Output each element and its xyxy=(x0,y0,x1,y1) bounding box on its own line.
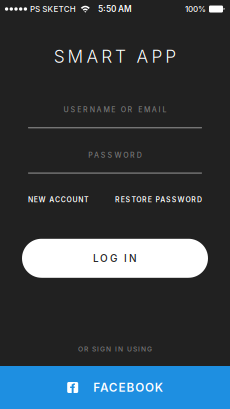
button[interactable]: RESTORE PASSWORD xyxy=(115,194,202,206)
staticText: PASSWORD xyxy=(88,151,142,159)
staticText: RESTORE PASSWORD xyxy=(115,196,202,204)
button[interactable]: LOG IN xyxy=(22,239,208,278)
staticText: 100% xyxy=(185,4,206,14)
button[interactable]: FACEBOOK xyxy=(0,366,230,409)
button[interactable]: NEW ACCOUNT xyxy=(28,194,89,206)
staticText: LOG IN xyxy=(93,252,137,264)
staticText: OR SIGN IN USING xyxy=(78,345,152,353)
staticText: PS SKETCH xyxy=(30,4,76,14)
staticText: FACEBOOK xyxy=(93,380,163,395)
staticText: NEW ACCOUNT xyxy=(28,196,89,204)
staticText: SMART APP xyxy=(54,46,176,67)
staticText: 5:50 AM xyxy=(98,4,132,14)
staticText: USERNAME OR EMAIL xyxy=(64,105,166,114)
